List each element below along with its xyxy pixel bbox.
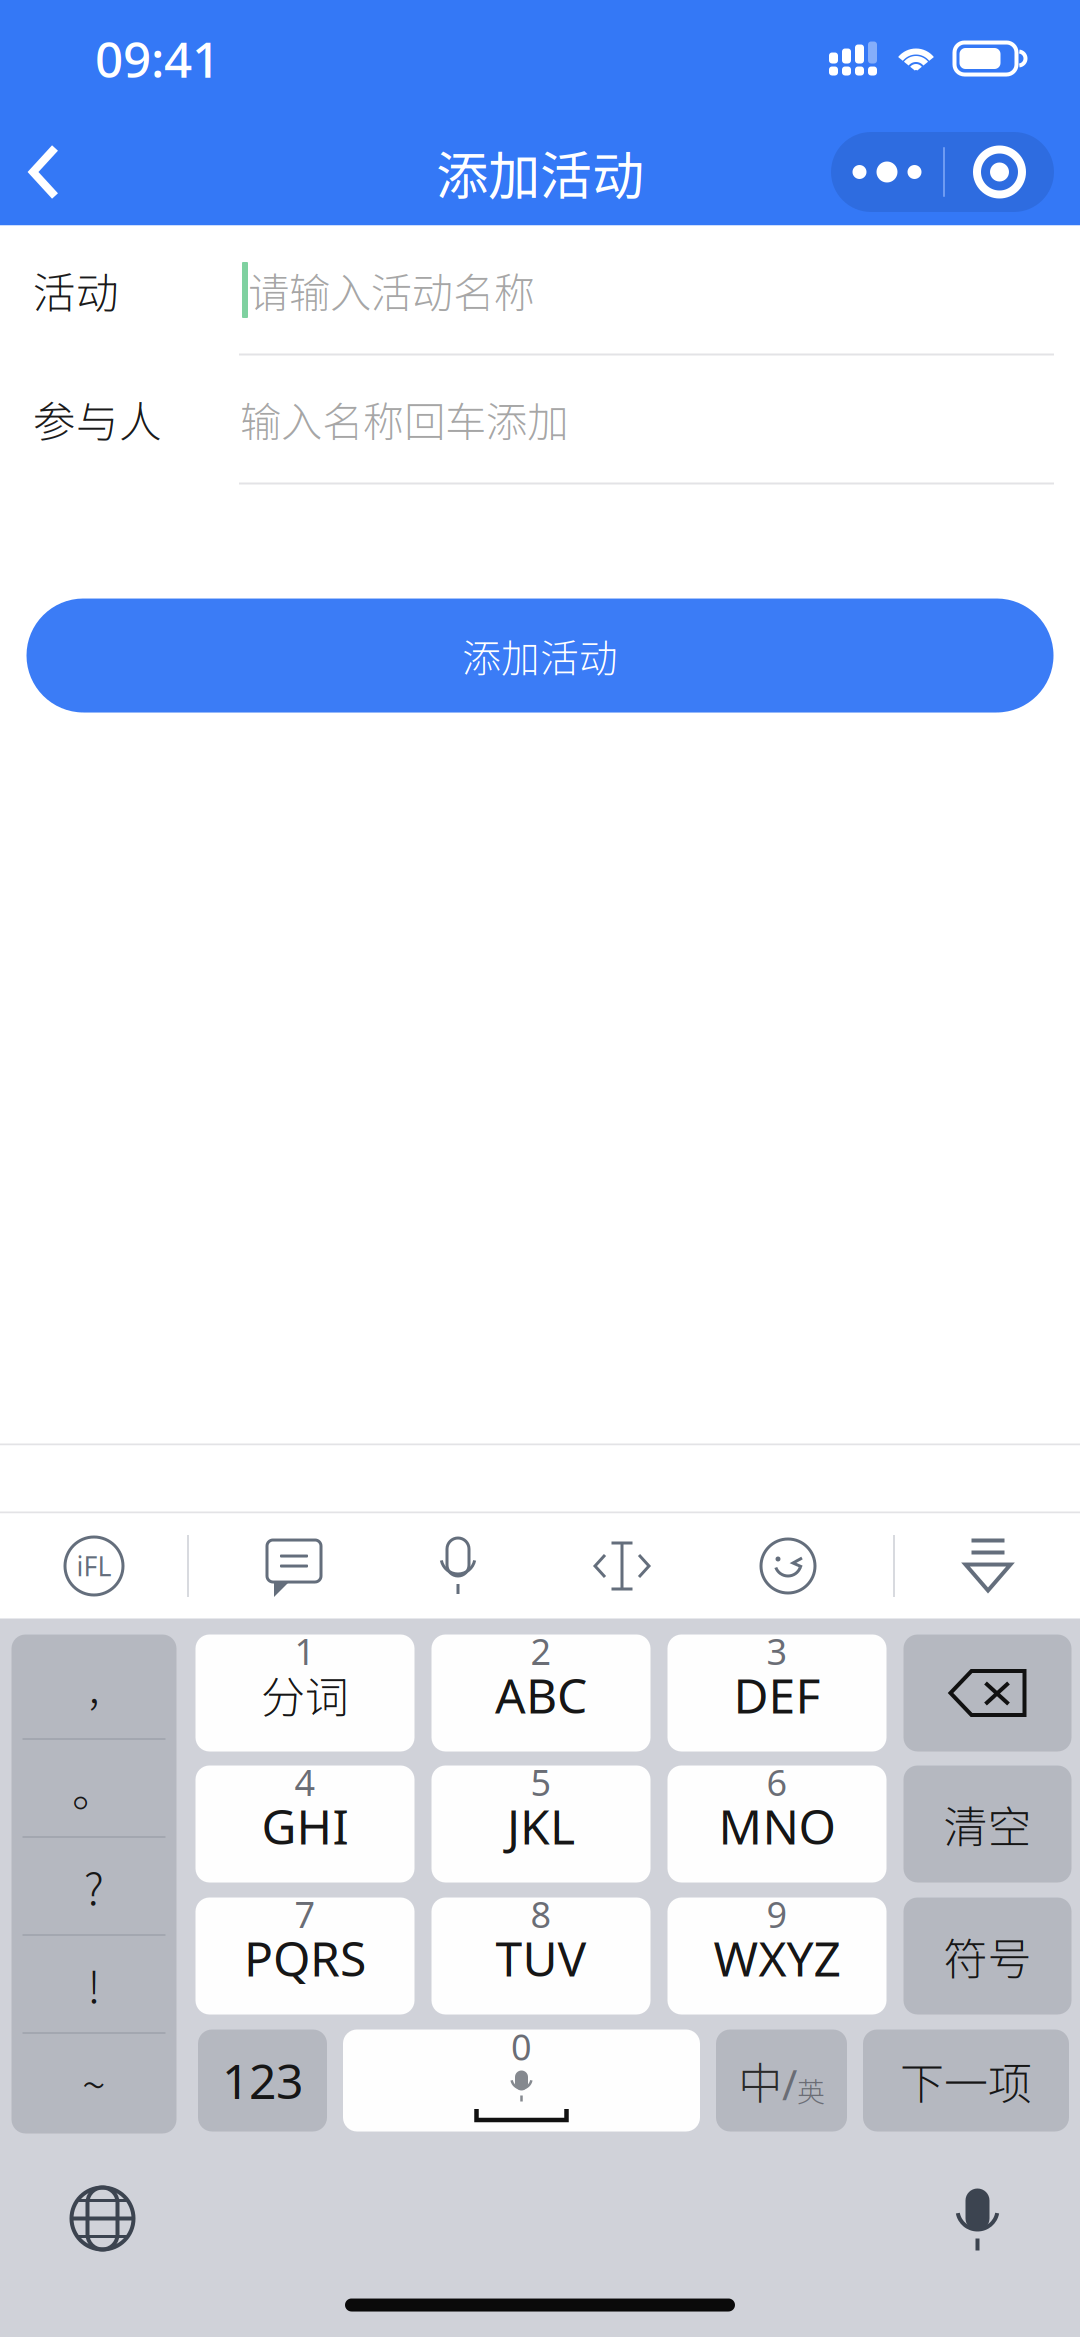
- button[interactable]: Space: [343, 2029, 700, 2131]
- button[interactable]: Back: [0, 122, 114, 222]
- staticText: 符号: [943, 1924, 1031, 1988]
- button[interactable]: 3: [667, 1634, 886, 1751]
- button[interactable]: 7: [195, 1897, 414, 2014]
- staticText: 6: [766, 1757, 787, 1806]
- staticText: 下一项: [900, 2049, 1032, 2112]
- button[interactable]: 符号: [903, 1897, 1071, 2014]
- button[interactable]: 清空: [903, 1765, 1071, 1882]
- button[interactable]: 6: [667, 1765, 886, 1882]
- staticText: ,: [88, 1652, 99, 1716]
- button[interactable]: Close: [945, 132, 1054, 212]
- button[interactable]: ~: [11, 2034, 176, 2130]
- staticText: ?: [84, 1854, 104, 1918]
- button[interactable]: 123: [198, 2029, 327, 2131]
- staticText: 5: [530, 1757, 551, 1806]
- staticText: 分词: [261, 1662, 349, 1726]
- staticText: 添加活动: [462, 627, 618, 683]
- staticText: 英: [797, 2070, 825, 2110]
- staticText: PQRS: [244, 1925, 366, 1991]
- button[interactable]: Dictation: [939, 2180, 1015, 2256]
- staticText: 2: [530, 1626, 551, 1675]
- staticText: 7: [294, 1889, 315, 1938]
- staticText: 123: [222, 2048, 303, 2113]
- button[interactable]: Voice input: [428, 1536, 488, 1596]
- staticText: MNO: [718, 1793, 835, 1859]
- button[interactable]: More: [831, 132, 943, 212]
- staticText: iFL: [76, 1548, 111, 1584]
- staticText: ABC: [495, 1662, 587, 1728]
- staticText: DEF: [733, 1662, 820, 1728]
- staticText: 8: [530, 1889, 551, 1938]
- staticText: 9: [766, 1889, 787, 1938]
- staticText: 3: [766, 1626, 787, 1675]
- button[interactable]: 8: [431, 1897, 650, 2014]
- staticText: 1: [294, 1626, 315, 1675]
- staticText: GHI: [261, 1793, 348, 1859]
- button[interactable]: 2: [431, 1634, 650, 1751]
- staticText: ~: [82, 2050, 106, 2114]
- staticText: 中: [738, 2049, 782, 2112]
- button[interactable]: 9: [667, 1897, 886, 2014]
- button[interactable]: Delete: [903, 1634, 1071, 1751]
- button[interactable]: Phrases: [264, 1536, 324, 1596]
- button[interactable]: 添加活动: [26, 598, 1053, 712]
- button[interactable]: 4: [195, 1765, 414, 1882]
- button[interactable]: ?: [11, 1838, 176, 1934]
- staticText: 4: [294, 1757, 315, 1806]
- staticText: 请输入活动名称: [248, 260, 535, 320]
- button[interactable]: Hide keyboard: [958, 1536, 1018, 1596]
- staticText: 0: [511, 2022, 532, 2071]
- button[interactable]: Move cursor: [592, 1536, 652, 1596]
- button[interactable]: !: [11, 1936, 176, 2032]
- staticText: 清空: [943, 1792, 1031, 1856]
- staticText: 参与人: [33, 388, 162, 450]
- button[interactable]: 。: [11, 1740, 176, 1836]
- button[interactable]: ,: [11, 1630, 176, 1738]
- button[interactable]: 5: [431, 1765, 650, 1882]
- staticText: TUV: [495, 1925, 586, 1991]
- staticText: 添加活动: [436, 134, 644, 210]
- button[interactable]: Switch keyboard: [64, 2180, 140, 2256]
- staticText: !: [87, 1952, 100, 2016]
- staticText: 输入名称回车添加: [240, 389, 568, 449]
- staticText: 09:41: [95, 25, 220, 92]
- button[interactable]: Switch Chinese English: [716, 2029, 847, 2131]
- button[interactable]: 1: [195, 1634, 414, 1751]
- staticText: WXYZ: [713, 1925, 840, 1991]
- staticText: 。: [72, 1756, 116, 1820]
- button[interactable]: Input method: [62, 1534, 126, 1598]
- button[interactable]: 下一项: [863, 2029, 1069, 2131]
- staticText: JKL: [507, 1793, 575, 1859]
- staticText: /: [782, 2056, 797, 2112]
- button[interactable]: Emoji: [758, 1536, 818, 1596]
- staticText: 活动: [33, 259, 119, 321]
